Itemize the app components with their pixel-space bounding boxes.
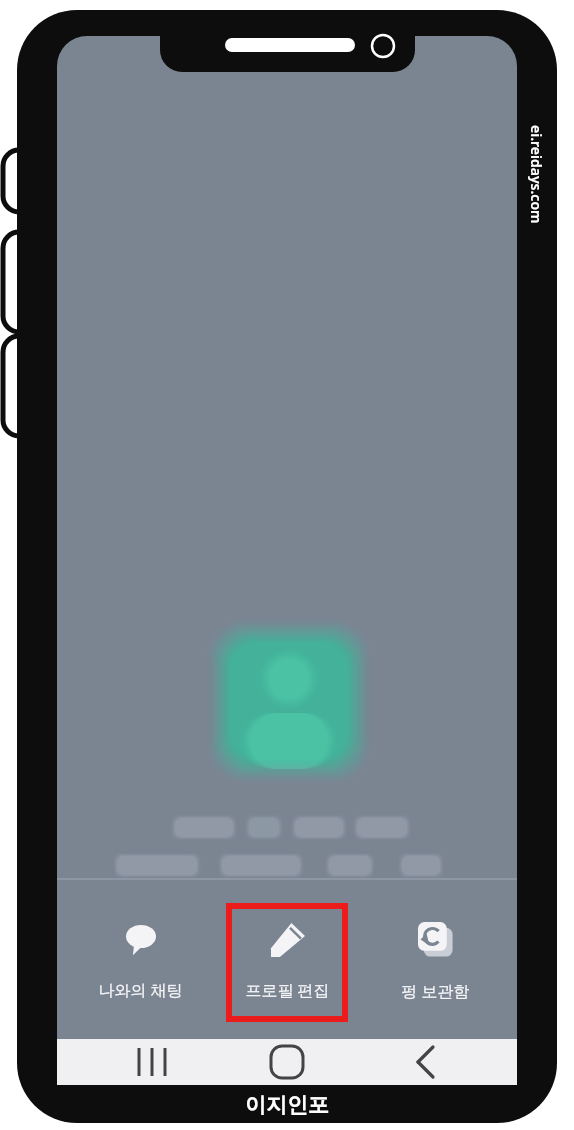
- other: 프로필 편집: [271, 923, 305, 957]
- staticText: ei.reidays.com: [527, 125, 546, 224]
- staticText: 프로필 편집: [245, 979, 330, 1001]
- button[interactable]: 펑 보관함: [370, 897, 500, 1027]
- button[interactable]: 프로필 편집: [222, 897, 352, 1027]
- other: 나와의 채팅: [124, 923, 158, 957]
- staticText: 나와의 채팅: [98, 979, 183, 1001]
- staticText: 펑 보관함: [401, 980, 470, 1002]
- other: 펑 보관함: [418, 922, 454, 958]
- staticText: 이지인포: [245, 1092, 329, 1118]
- button[interactable]: 나와의 채팅: [75, 897, 205, 1027]
